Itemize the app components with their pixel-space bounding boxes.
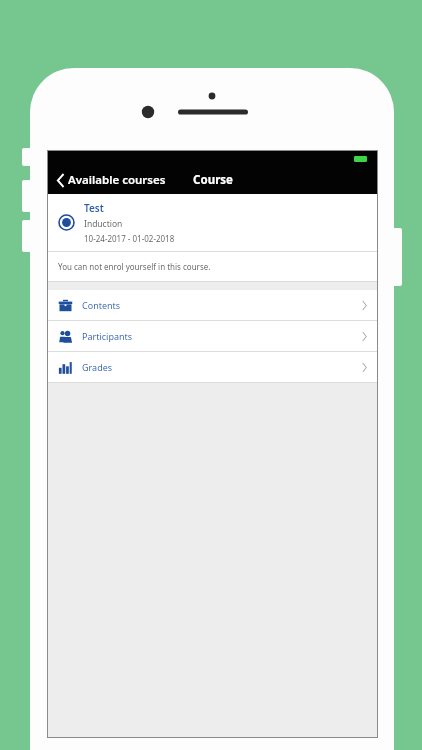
button[interactable]: Participants (48, 321, 377, 351)
button[interactable]: Contents (48, 290, 377, 320)
button[interactable]: Available courses (54, 170, 169, 190)
staticText: 10-24-2017 - 01-02-2018 (84, 233, 175, 244)
staticText: Test (84, 201, 104, 215)
staticText: Available courses (68, 172, 166, 188)
staticText: Grades (82, 361, 113, 373)
staticText: Participants (82, 330, 133, 342)
staticText: Contents (82, 299, 121, 311)
staticText: You can not enrol yourself in this cours… (58, 261, 211, 272)
button[interactable]: Test (48, 194, 377, 251)
staticText: Induction (84, 218, 123, 230)
button[interactable]: Grades (48, 352, 377, 382)
staticText: Course (193, 172, 233, 188)
